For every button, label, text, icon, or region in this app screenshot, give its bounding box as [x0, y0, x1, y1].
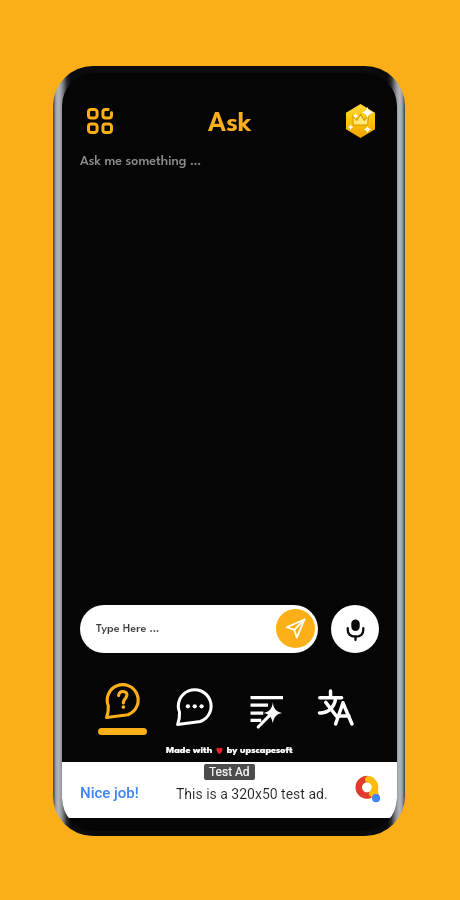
button[interactable]: Chat [162, 677, 226, 735]
staticText: Test Ad [209, 765, 250, 779]
button[interactable]: Type Here … [80, 605, 318, 653]
button[interactable]: Apps menu [80, 101, 119, 140]
staticText: This is a 320x50 test ad. [176, 786, 328, 802]
button[interactable]: Translate [303, 677, 367, 735]
staticText: Made with [166, 746, 215, 755]
button[interactable]: Premium [343, 103, 378, 138]
staticText: Nice job! [80, 784, 139, 802]
button[interactable]: Send [276, 609, 315, 648]
button[interactable]: Voice input [331, 605, 379, 653]
staticText: by upscapesoft [224, 746, 293, 755]
button[interactable]: Ask [90, 677, 154, 735]
button[interactable]: Summarize [234, 677, 298, 735]
staticText: Ask me something … [80, 155, 202, 168]
staticText: Type Here … [96, 624, 160, 635]
staticText: Ask [208, 111, 252, 137]
